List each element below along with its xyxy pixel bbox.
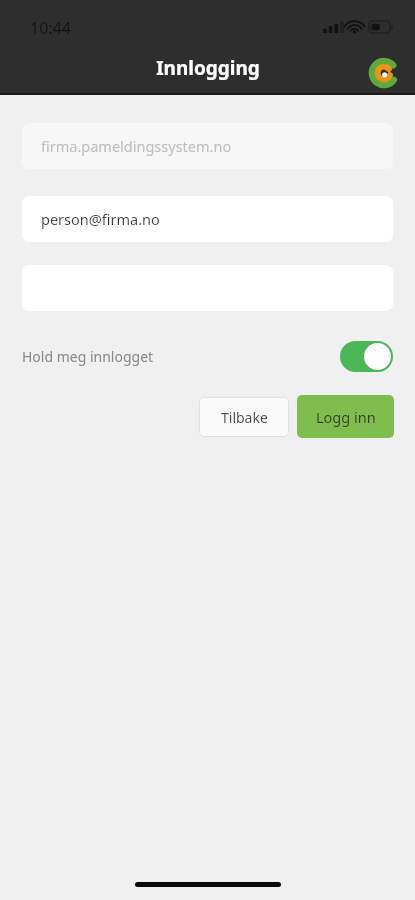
staticText: person@firma.no bbox=[41, 209, 160, 229]
staticText: Tilbake bbox=[221, 408, 268, 427]
button[interactable]: person@firma.no bbox=[22, 196, 393, 242]
staticText: Hold meg innlogget bbox=[22, 347, 154, 366]
button[interactable]: Tilbake bbox=[199, 397, 289, 437]
button[interactable]: firma.pameldingssystem.no bbox=[22, 123, 393, 169]
button[interactable]: App logo bbox=[369, 58, 399, 88]
staticText: Innlogging bbox=[156, 55, 260, 81]
staticText: 10:44 bbox=[30, 17, 71, 39]
button[interactable]: Logg inn bbox=[297, 395, 394, 438]
staticText: Logg inn bbox=[316, 407, 376, 427]
button[interactable]: Hold meg innlogget bbox=[340, 341, 393, 372]
staticText: firma.pameldingssystem.no bbox=[41, 136, 232, 156]
